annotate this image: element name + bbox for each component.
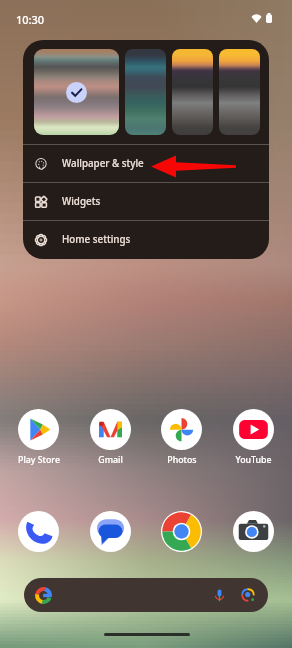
staticText: 10:30 (16, 12, 45, 27)
staticText: Widgets (62, 195, 101, 208)
button[interactable]: Phone (5, 511, 72, 552)
button[interactable]: Gmail (77, 409, 144, 466)
button[interactable]: Photos (148, 409, 215, 466)
button[interactable]: Camera (220, 511, 287, 552)
staticText: Play Store (18, 454, 60, 466)
button[interactable]: Play Store (5, 409, 72, 466)
button[interactable]: YouTube (220, 409, 287, 466)
staticText: Gmail (98, 454, 123, 466)
staticText: Home settings (62, 233, 131, 246)
button[interactable]: Home settings (23, 221, 269, 258)
button[interactable] (219, 49, 260, 135)
staticText: Wallpaper & style (62, 157, 144, 170)
button[interactable] (125, 49, 166, 135)
button[interactable]: Voice search (212, 588, 227, 603)
button[interactable]: Messages (77, 511, 144, 552)
button[interactable] (34, 49, 119, 135)
button[interactable]: Google Lens (240, 587, 256, 603)
button[interactable] (172, 49, 213, 135)
button[interactable]: Widgets (23, 183, 269, 220)
button[interactable]: Wallpaper & style (23, 145, 269, 182)
button[interactable]: Chrome (148, 511, 215, 552)
staticText: YouTube (235, 454, 272, 466)
staticText: Photos (167, 454, 197, 466)
button[interactable]: Voice search (24, 578, 268, 612)
